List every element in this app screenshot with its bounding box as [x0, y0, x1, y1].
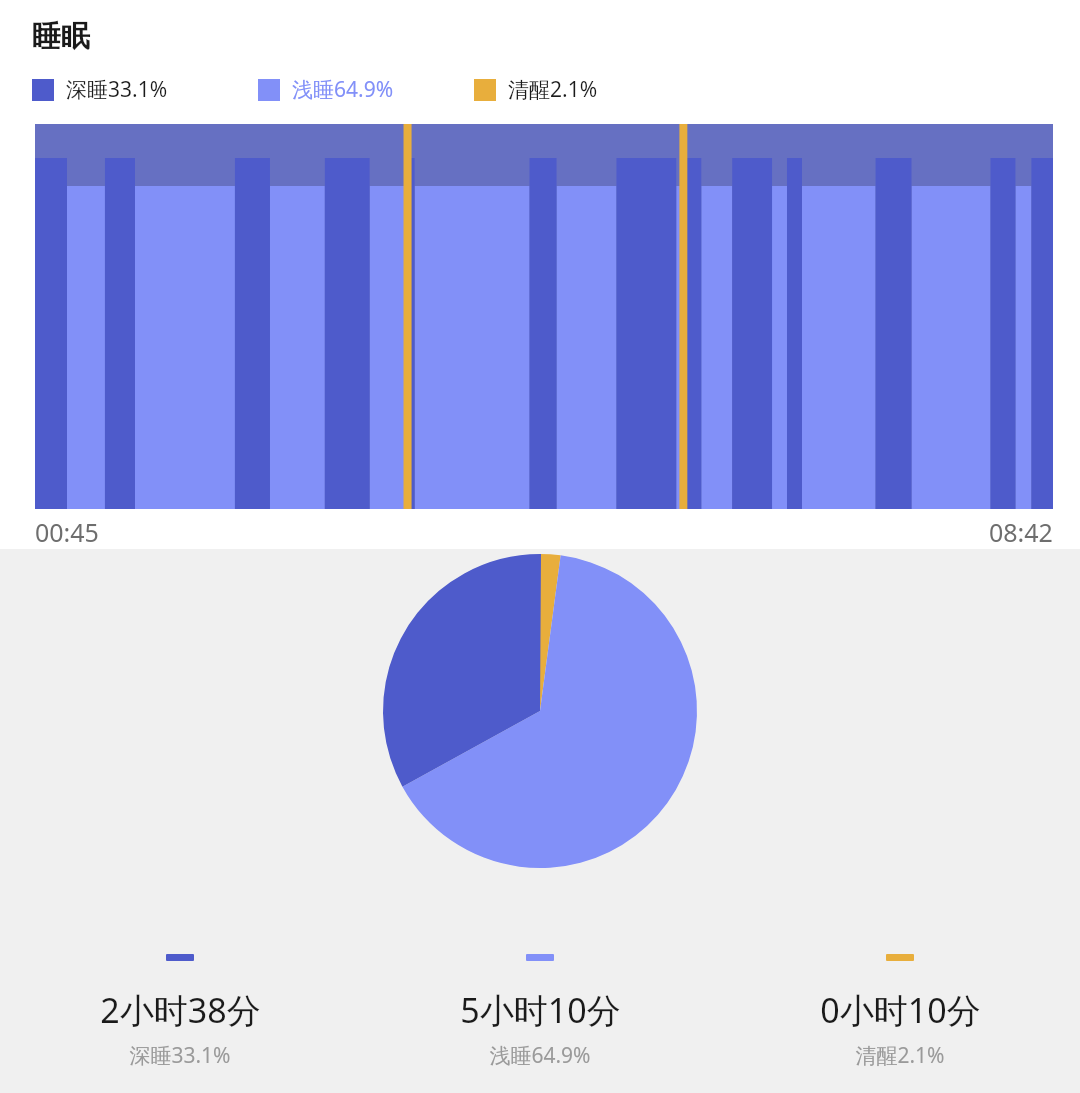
staticText: 00:45 — [35, 515, 99, 549]
button[interactable]: 5小时10分 — [360, 954, 720, 1070]
staticText: 睡眠 — [32, 18, 90, 55]
staticText: 清醒2.1% — [855, 1041, 945, 1070]
button[interactable]: 清醒2.1% — [474, 75, 598, 104]
button[interactable]: 0小时10分 — [720, 954, 1080, 1070]
button[interactable]: Sleep composition pie chart — [0, 549, 1080, 1093]
button[interactable]: 2小时38分 — [0, 954, 360, 1070]
staticText: 深睡33.1% — [129, 1041, 231, 1070]
staticText: 2小时38分 — [100, 987, 261, 1033]
staticText: 5小时10分 — [460, 987, 621, 1033]
staticText: 深睡33.1% — [66, 75, 168, 104]
staticText: 浅睡64.9% — [489, 1041, 591, 1070]
staticText: 08:42 — [989, 515, 1053, 549]
button[interactable]: Sleep stage timeline chart — [0, 124, 1080, 509]
staticText: 浅睡64.9% — [292, 75, 394, 104]
button[interactable]: 浅睡64.9% — [258, 75, 394, 104]
button[interactable]: 深睡33.1% — [32, 75, 168, 104]
staticText: 0小时10分 — [820, 987, 981, 1033]
staticText: 清醒2.1% — [508, 75, 598, 104]
